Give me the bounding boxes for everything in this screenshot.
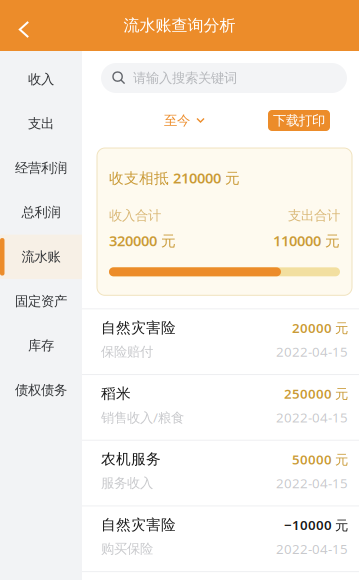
staticText: 320000 元	[109, 231, 176, 250]
staticText: 库存	[28, 337, 54, 354]
staticText: 收支相抵 210000 元	[109, 168, 240, 187]
button[interactable]: 债权债务	[0, 368, 82, 412]
staticText: 总利润	[21, 204, 60, 221]
staticText: 自然灾害险	[101, 516, 176, 534]
staticText: 20000 元	[292, 319, 348, 337]
staticText: 收入	[28, 71, 54, 87]
staticText: 收入合计	[109, 207, 161, 224]
staticText: 请输入搜索关键词	[133, 70, 237, 86]
staticText: 稻米	[101, 384, 131, 402]
staticText: 购买保险	[101, 541, 153, 557]
staticText: 支出	[28, 115, 54, 132]
button[interactable]: 农机服务	[82, 440, 359, 505]
button[interactable]: 支出	[0, 101, 82, 146]
button[interactable]: 固定资产	[0, 279, 82, 323]
staticText: 销售收入/粮食	[101, 408, 184, 426]
staticText: 2022-04-15	[276, 474, 348, 492]
button[interactable]: 下载打印	[268, 110, 330, 131]
button[interactable]: 稻米	[82, 374, 359, 440]
staticText: 服务收入	[101, 475, 153, 491]
staticText: 2022-04-15	[276, 408, 348, 426]
button[interactable]: 经营利润	[0, 146, 82, 190]
staticText: 2022-04-15	[276, 540, 348, 558]
staticText: 下载打印	[273, 112, 325, 129]
staticText: −10000 元	[284, 516, 348, 534]
button[interactable]: 库存	[0, 323, 82, 368]
staticText: 至今	[164, 112, 190, 129]
staticText: 流水账查询分析	[123, 16, 235, 35]
button[interactable]: 至今	[164, 110, 205, 131]
button[interactable]: 总利润	[0, 190, 82, 235]
staticText: 债权债务	[15, 382, 67, 398]
button[interactable]: 自然灾害险	[82, 308, 359, 374]
button[interactable]: 收入	[0, 57, 82, 101]
staticText: 50000 元	[292, 450, 348, 468]
staticText: 农机服务	[101, 450, 161, 468]
staticText: 固定资产	[15, 293, 67, 309]
staticText: 250000 元	[284, 385, 348, 402]
staticText: 2022-04-15	[276, 343, 348, 360]
staticText: 经营利润	[15, 160, 67, 176]
staticText: 流水账	[21, 249, 60, 265]
button[interactable]: Back	[0, 0, 45, 55]
staticText: 110000 元	[273, 231, 340, 250]
staticText: 保险赔付	[101, 343, 153, 360]
button[interactable]: 流水账	[0, 235, 82, 279]
staticText: 自然灾害险	[101, 319, 176, 337]
staticText: 支出合计	[288, 207, 340, 224]
button[interactable]: 自然灾害险	[82, 505, 359, 571]
